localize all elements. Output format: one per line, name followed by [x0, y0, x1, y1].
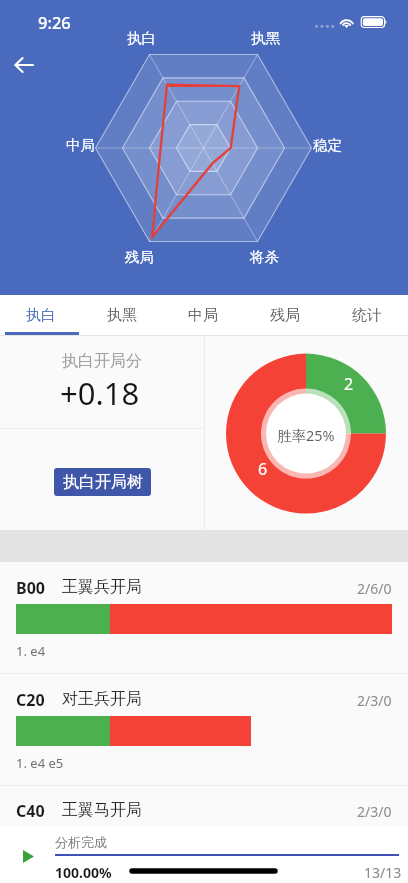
staticText: 执黑: [251, 29, 280, 47]
button[interactable]: 执白开局树: [54, 468, 151, 496]
staticText: 残局: [125, 248, 154, 266]
staticText: 执白: [26, 306, 56, 325]
staticText: C20: [16, 689, 45, 711]
staticText: 对王兵开局: [62, 689, 142, 709]
staticText: 胜率25%: [277, 425, 335, 445]
staticText: 王翼兵开局: [62, 577, 142, 597]
staticText: 执白: [127, 29, 156, 47]
button[interactable]: C40: [0, 785, 408, 883]
staticText: 2/6/0: [357, 579, 392, 598]
staticText: 残局: [270, 306, 300, 325]
staticText: 执黑: [107, 306, 137, 325]
staticText: 13/13: [364, 863, 402, 882]
staticText: 9:26: [38, 11, 71, 33]
staticText: +0.18: [60, 372, 140, 414]
button[interactable]: Play: [14, 842, 42, 870]
button[interactable]: 中局: [162, 295, 244, 335]
button[interactable]: Back: [8, 49, 40, 81]
staticText: 执白开局树: [63, 472, 143, 492]
button[interactable]: C20: [0, 674, 408, 786]
staticText: 执白开局分: [62, 351, 142, 371]
staticText: 2/3/0: [357, 691, 392, 710]
button[interactable]: 执白: [0, 295, 81, 335]
staticText: 中局: [66, 136, 95, 154]
staticText: 将杀: [250, 248, 279, 266]
staticText: 1. e4 e5 2. Nf3: [16, 865, 103, 883]
button[interactable]: B00: [0, 562, 408, 674]
staticText: 稳定: [313, 136, 342, 154]
staticText: B00: [16, 577, 45, 599]
staticText: C40: [16, 800, 45, 822]
staticText: 2/3/0: [357, 802, 392, 821]
staticText: 100.00%: [55, 863, 112, 882]
staticText: 中局: [188, 306, 218, 325]
staticText: 6: [258, 458, 268, 480]
staticText: 统计: [352, 306, 382, 325]
staticText: 1. e4: [16, 642, 46, 660]
button[interactable]: 残局: [244, 295, 326, 335]
button[interactable]: 执黑: [81, 295, 162, 335]
staticText: 2: [344, 373, 354, 395]
staticText: 1. e4 e5: [16, 754, 64, 772]
staticText: 王翼马开局: [62, 800, 142, 820]
button[interactable]: 统计: [326, 295, 408, 335]
staticText: 分析完成: [55, 834, 107, 850]
